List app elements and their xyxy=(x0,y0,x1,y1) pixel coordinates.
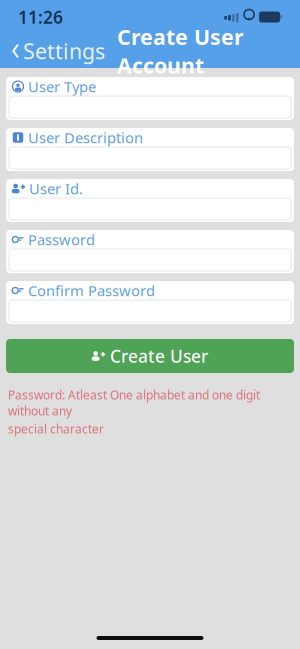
staticText: special character xyxy=(8,421,104,437)
staticText: Confirm Password xyxy=(28,281,155,300)
staticText: Password xyxy=(28,230,95,249)
staticText: Password: Atleast One alphabet and one d… xyxy=(8,387,260,419)
button[interactable]: Create User xyxy=(6,339,294,373)
staticText: User Description xyxy=(28,128,143,147)
staticText: Create User xyxy=(110,344,208,367)
staticText: Create User Account xyxy=(117,23,244,79)
staticText: User Type xyxy=(28,77,96,96)
staticText: 11:26 xyxy=(18,5,63,28)
staticText: User Id. xyxy=(29,179,83,198)
button[interactable]: Settings xyxy=(8,31,107,71)
staticText: Settings xyxy=(23,37,105,65)
